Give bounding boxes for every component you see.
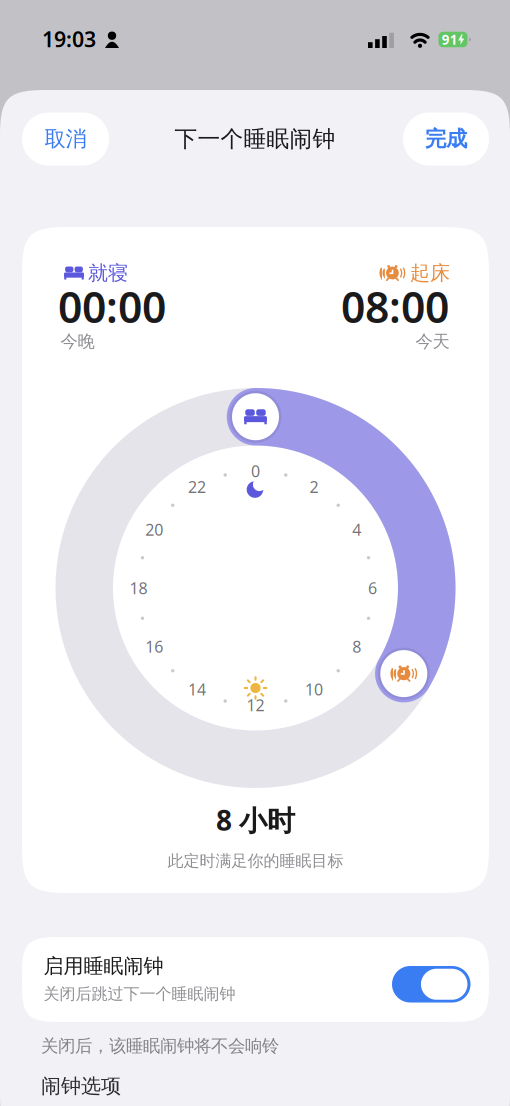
- staticText: 10: [305, 679, 323, 700]
- button[interactable]: 起床时间: [377, 647, 431, 701]
- staticText: 启用睡眠闹钟: [43, 954, 163, 978]
- staticText: 闹钟选项: [41, 1074, 121, 1098]
- staticText: 00:00: [58, 278, 166, 335]
- staticText: 6: [368, 577, 377, 599]
- staticText: 完成: [425, 126, 467, 152]
- staticText: 12: [246, 694, 264, 716]
- staticText: 0: [251, 460, 260, 482]
- staticText: 16: [145, 636, 163, 657]
- button[interactable]: 取消: [22, 112, 109, 165]
- staticText: 4: [352, 519, 361, 540]
- staticText: 91: [442, 31, 458, 48]
- staticText: 8: [352, 636, 361, 657]
- staticText: 19:03: [42, 25, 96, 53]
- button[interactable]: 启用睡眠闹钟: [392, 966, 470, 1002]
- staticText: 起床: [410, 261, 450, 285]
- button[interactable]: 就寝时间: [228, 390, 282, 444]
- staticText: 14: [188, 679, 206, 700]
- staticText: 关闭后，该睡眠闹钟将不会响铃: [41, 1035, 279, 1057]
- staticText: 20: [145, 519, 163, 540]
- staticText: 今晚: [60, 331, 94, 352]
- button[interactable]: 完成: [403, 112, 489, 165]
- staticText: 18: [129, 577, 147, 599]
- staticText: 取消: [44, 126, 86, 152]
- staticText: 关闭后跳过下一个睡眠闹钟: [43, 984, 235, 1004]
- staticText: 8 小时: [216, 801, 295, 839]
- staticText: 下一个睡眠闹钟: [174, 125, 335, 153]
- staticText: 此定时满足你的睡眠目标: [167, 851, 343, 871]
- staticText: 就寝: [88, 261, 128, 285]
- staticText: 22: [188, 476, 206, 497]
- staticText: 08:00: [341, 278, 449, 335]
- staticText: 今天: [415, 331, 449, 352]
- staticText: 2: [309, 476, 318, 497]
